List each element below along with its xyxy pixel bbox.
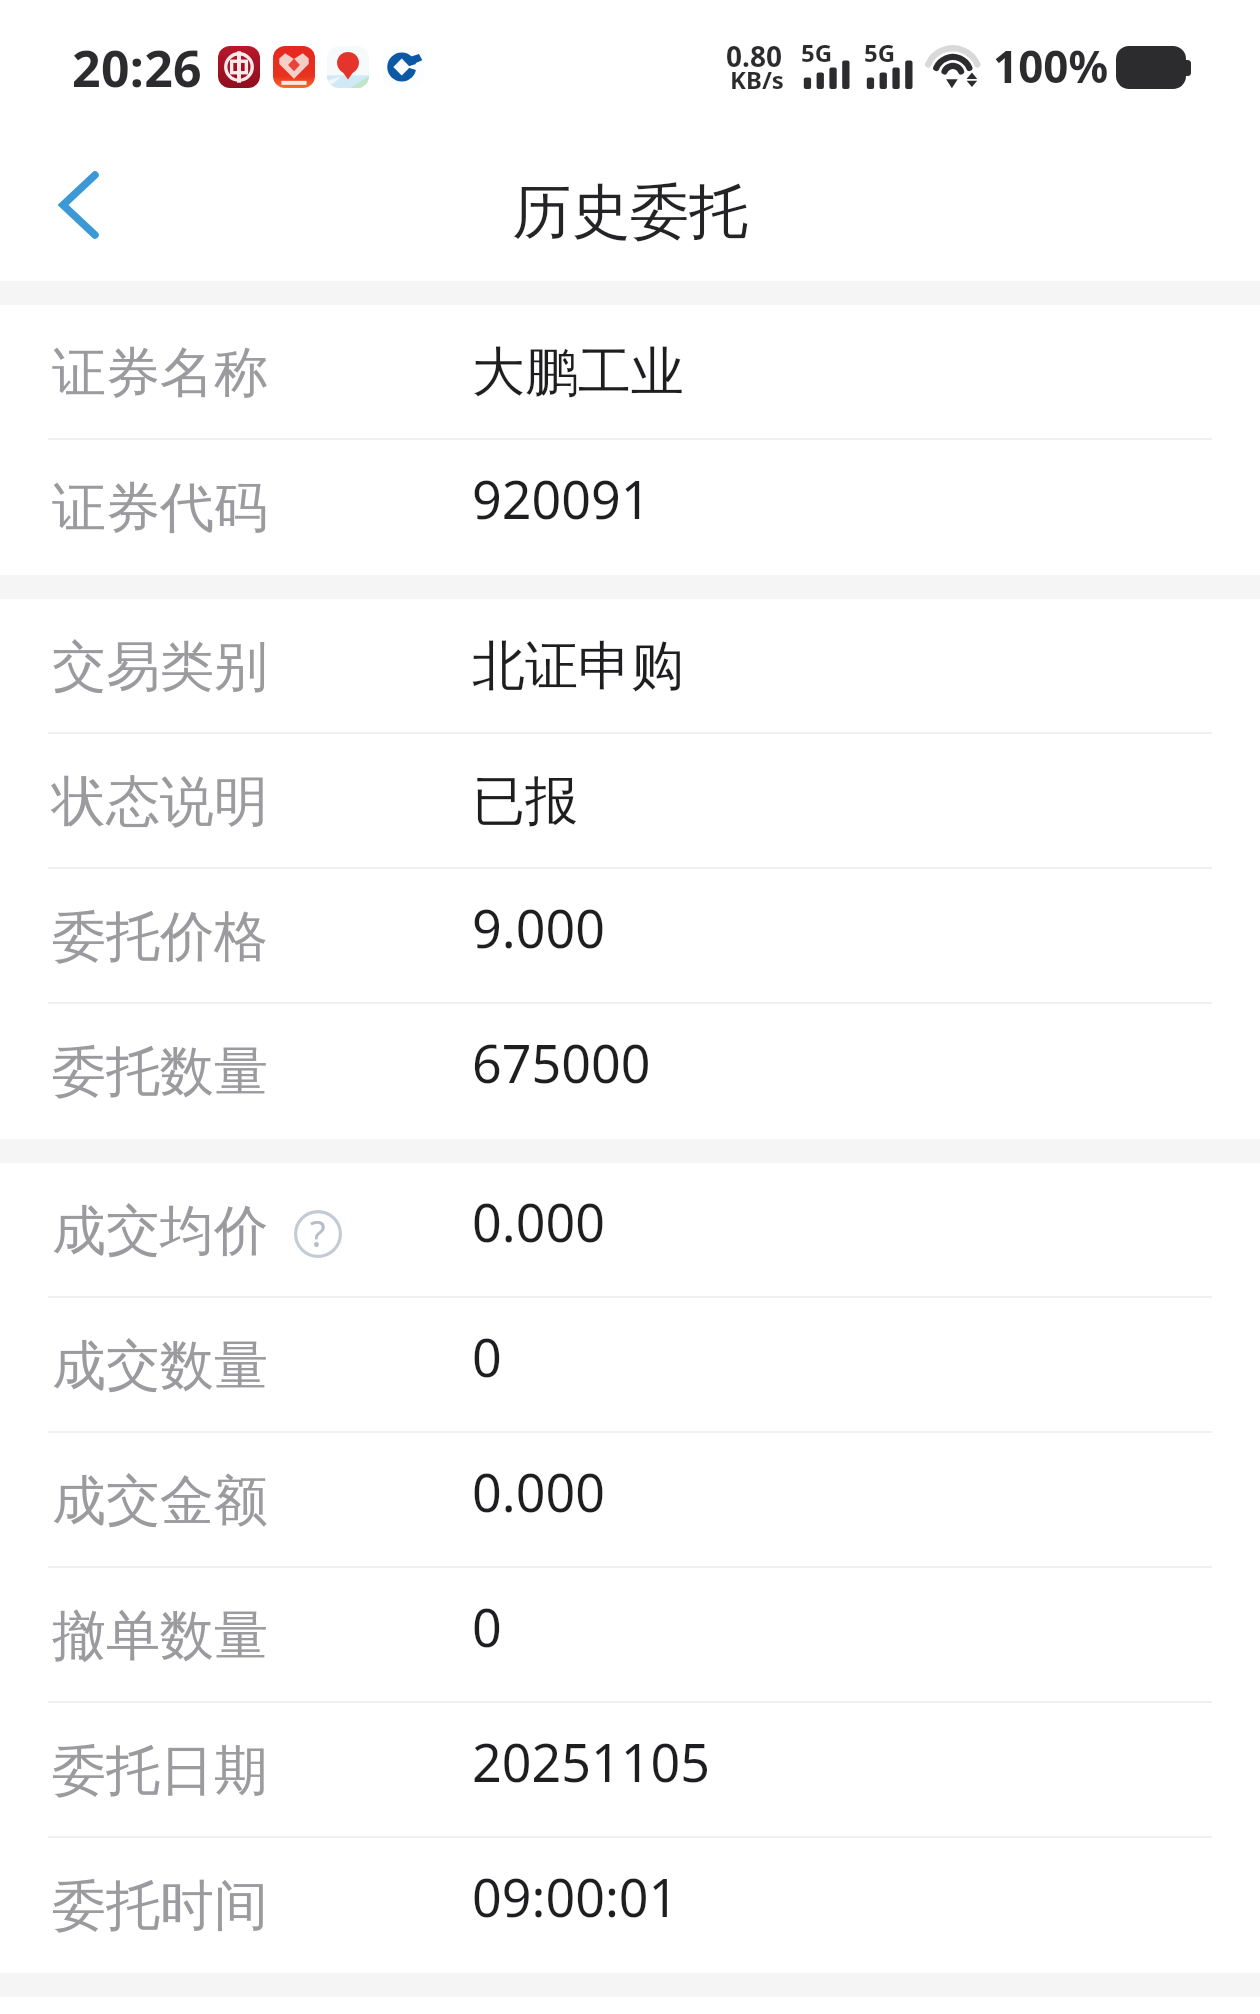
staticText: 09:00:01 (472, 1861, 679, 1932)
staticText: 0.000 (472, 1186, 605, 1257)
staticText: 5G (864, 36, 896, 69)
staticText: 证券代码 (52, 474, 268, 542)
staticText: 100% (993, 36, 1109, 96)
button[interactable]: 状态说明 (0, 734, 1260, 869)
staticText: 675000 (472, 1027, 651, 1098)
staticText: 交易类别 (52, 633, 268, 701)
staticText: 0 (472, 1321, 502, 1392)
staticText: 委托价格 (52, 903, 268, 971)
button[interactable]: 证券名称 (0, 305, 1260, 440)
button[interactable]: 撤单数量 (0, 1568, 1260, 1703)
staticText: 成交均价 (52, 1197, 268, 1265)
staticText: 委托数量 (52, 1038, 268, 1106)
staticText: 委托日期 (52, 1737, 268, 1805)
button[interactable]: 委托时间 (0, 1838, 1260, 1973)
staticText: 大鹏工业 (472, 339, 684, 406)
button[interactable]: 成交金额 (0, 1433, 1260, 1568)
staticText: 20251105 (472, 1726, 710, 1797)
staticText: 撤单数量 (52, 1602, 268, 1670)
button[interactable]: 成交均价 (0, 1163, 1260, 1298)
staticText: ? (310, 1209, 326, 1257)
staticText: 成交金额 (52, 1467, 268, 1535)
staticText: KB/s (730, 63, 784, 96)
staticText: 9.000 (472, 892, 605, 963)
staticText: 0 (472, 1591, 502, 1662)
staticText: 0.80 (726, 37, 782, 75)
button[interactable]: Back (29, 155, 129, 255)
button[interactable]: 成交数量 (0, 1298, 1260, 1433)
button[interactable]: 委托数量 (0, 1004, 1260, 1139)
staticText: 20:26 (72, 34, 202, 102)
button[interactable]: 交易类别 (0, 599, 1260, 734)
button[interactable]: Help (294, 1210, 342, 1258)
staticText: 成交数量 (52, 1332, 268, 1400)
staticText: 委托时间 (52, 1872, 268, 1940)
staticText: 历史委托 (512, 175, 748, 249)
staticText: 920091 (472, 463, 651, 534)
staticText: 5G (801, 36, 833, 69)
staticText: 已报 (472, 768, 578, 835)
button[interactable]: 委托日期 (0, 1703, 1260, 1838)
staticText: 证券名称 (52, 339, 268, 407)
staticText: 北证申购 (472, 633, 684, 700)
staticText: 状态说明 (52, 768, 268, 836)
button[interactable]: 证券代码 (0, 440, 1260, 575)
staticText: 0.000 (472, 1456, 605, 1527)
button[interactable]: 委托价格 (0, 869, 1260, 1004)
